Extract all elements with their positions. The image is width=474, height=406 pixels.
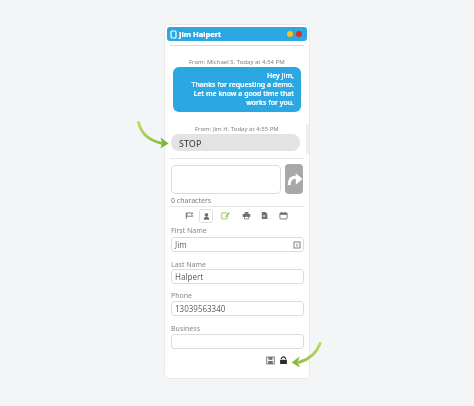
staticText: Jim Halpert xyxy=(179,29,222,39)
button[interactable]: Lock xyxy=(279,356,288,365)
button[interactable]: Print xyxy=(242,211,251,220)
button[interactable]: Halpert xyxy=(171,269,304,284)
staticText: Hey Jim, Thanks for requesting a demo. L… xyxy=(180,71,294,107)
button[interactable]: Flag xyxy=(185,211,194,220)
button[interactable]: Document xyxy=(260,211,269,220)
button[interactable]: Hey Jim, Thanks for requesting a demo. L… xyxy=(173,67,301,112)
button[interactable]: Calendar xyxy=(279,211,288,220)
staticText: Business xyxy=(171,324,201,334)
staticText: From: Michael S. Today at 4:54 PM xyxy=(189,58,285,66)
staticText: 0 characters xyxy=(171,196,212,206)
staticText: Jim xyxy=(175,239,187,250)
staticText: First Name xyxy=(171,226,207,236)
staticText: STOP xyxy=(179,137,202,149)
staticText: Phone xyxy=(171,291,193,301)
button[interactable] xyxy=(171,334,304,349)
button[interactable]: 13039563340 xyxy=(171,301,304,316)
staticText: From: Jim H. Today at 4:55 PM xyxy=(195,125,279,133)
button[interactable]: Contact xyxy=(199,209,213,223)
button[interactable]: Message xyxy=(171,165,281,194)
button[interactable]: Jim Halpert xyxy=(167,27,307,41)
button[interactable]: STOP xyxy=(171,134,300,151)
button[interactable]: Save xyxy=(266,356,275,365)
staticText: Halpert xyxy=(175,271,204,282)
staticText: Last Name xyxy=(171,260,207,270)
button[interactable]: Send xyxy=(285,164,303,194)
button[interactable]: Jim xyxy=(171,237,304,252)
staticText: 13039563340 xyxy=(175,303,226,314)
button[interactable]: Edit xyxy=(221,211,230,220)
